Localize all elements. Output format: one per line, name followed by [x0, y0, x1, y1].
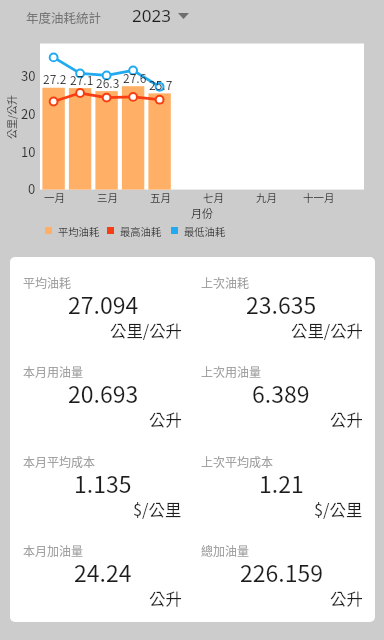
button[interactable]: 上次平均成本 [193, 436, 375, 525]
staticText: 上次油耗 [201, 274, 250, 291]
button[interactable]: 本月平均成本 [10, 436, 193, 525]
staticText: 0 [28, 179, 36, 198]
staticText: 本月加油量 [23, 542, 84, 559]
staticText: 九月 [256, 190, 277, 205]
staticText: 上次用油量 [201, 363, 262, 380]
staticText: 27.2 [43, 70, 67, 87]
staticText: 十一月 [303, 190, 335, 205]
staticText: 24.24 [74, 555, 132, 585]
other: Select year [178, 13, 189, 19]
staticText: 公升 [149, 407, 182, 431]
staticText: 30 [21, 66, 36, 85]
staticText: $/公里 [314, 497, 363, 521]
staticText: 公升 [330, 586, 363, 610]
staticText: 26.3 [96, 74, 120, 91]
staticText: 本月用油量 [23, 363, 84, 380]
staticText: 最高油耗 [120, 224, 162, 237]
staticText: 最低油耗 [184, 224, 226, 237]
staticText: 月份 [191, 205, 213, 221]
staticText: 七月 [203, 190, 224, 205]
staticText: 1.21 [259, 466, 304, 496]
button[interactable]: 本月加油量 [10, 525, 193, 614]
staticText: 五月 [150, 190, 171, 205]
staticText: 公里/公升 [291, 318, 363, 342]
button[interactable]: 上次油耗 [193, 257, 375, 346]
staticText: 公里/公升 [4, 95, 18, 139]
staticText: 27.1 [70, 71, 94, 88]
staticText: $/公里 [133, 497, 182, 521]
staticText: 2023 [132, 4, 171, 27]
staticText: 本月平均成本 [23, 453, 96, 470]
staticText: 23.635 [246, 287, 317, 317]
button[interactable]: 最低油耗 [171, 224, 226, 237]
staticText: 公升 [149, 586, 182, 610]
staticText: 20.693 [68, 376, 139, 406]
staticText: 平均油耗 [23, 274, 72, 291]
staticText: 上次平均成本 [201, 453, 274, 470]
button[interactable]: 平均油耗 [10, 257, 193, 346]
button[interactable]: 平均油耗 [45, 224, 100, 237]
staticText: 27.6 [123, 69, 147, 86]
staticText: 公里/公升 [110, 318, 182, 342]
staticText: 20 [21, 104, 36, 123]
button[interactable]: 上次用油量 [193, 346, 375, 435]
staticText: 總加油量 [201, 542, 250, 559]
staticText: 三月 [97, 190, 118, 205]
staticText: 年度油耗統計 [26, 8, 102, 26]
button[interactable]: 總加油量 [193, 525, 375, 614]
staticText: 公升 [330, 407, 363, 431]
staticText: 1.135 [74, 466, 132, 496]
staticText: 6.389 [252, 376, 310, 406]
staticText: 10 [21, 142, 36, 161]
staticText: 一月 [44, 190, 65, 205]
button[interactable]: 最高油耗 [107, 224, 162, 237]
staticText: 25.7 [149, 76, 173, 93]
button[interactable]: 2023 [130, 0, 191, 32]
button[interactable]: 本月用油量 [10, 346, 193, 435]
staticText: 平均油耗 [58, 224, 100, 237]
staticText: 226.159 [240, 555, 323, 585]
staticText: 27.094 [68, 287, 139, 317]
